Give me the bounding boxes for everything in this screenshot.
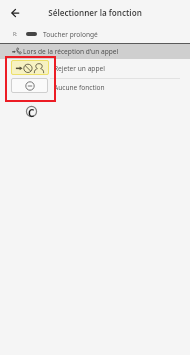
button[interactable]: Aucune fonction	[0, 77, 190, 96]
staticText: Lors de la réception d'un appel	[23, 47, 119, 56]
staticText: Aucune fonction	[54, 83, 105, 92]
staticText: Sélectionner la fonction	[0, 7, 190, 18]
button[interactable]: Back	[5, 3, 24, 22]
staticText: C	[28, 106, 35, 117]
button[interactable]: Lors de la réception d'un appel	[0, 44, 190, 59]
staticText: R:	[13, 31, 18, 38]
staticText: Rejeter un appel	[54, 64, 105, 73]
staticText: Toucher prolongé	[43, 30, 98, 39]
button[interactable]: R:	[0, 26, 190, 42]
button[interactable]: Rejeter un appel	[0, 59, 190, 78]
